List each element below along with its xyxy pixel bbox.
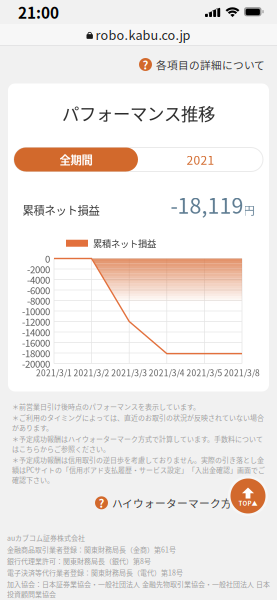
button[interactable]: ?	[0, 485, 277, 521]
button[interactable]: 2021	[138, 147, 263, 171]
staticText: ?	[142, 56, 148, 73]
staticText: 各項目の詳細について	[156, 57, 265, 72]
staticText: ＊予定成功報酬は信用取引の逆日歩を考慮しておりません。実際の引き落とし金額はPC…	[12, 455, 265, 485]
button[interactable]: Back to top	[228, 476, 268, 516]
staticText: -8000	[27, 293, 50, 307]
staticText: 2021/3/2	[74, 366, 110, 379]
staticText: -6000	[27, 283, 50, 297]
staticText: 銀行代理業許可：関東財務局長（銀代）第8号	[7, 556, 151, 566]
staticText: -14000	[22, 325, 50, 339]
staticText: ?	[98, 494, 104, 511]
staticText: 2021/3/4	[149, 366, 185, 379]
staticText: -18,119	[170, 189, 243, 220]
staticText: 電子決済等代行業者登録：関東財務局長（電代）第18号	[7, 567, 183, 577]
staticText: -18000	[22, 346, 50, 360]
staticText: ＊ご利用のタイミングによっては、直近のお取引の状況が反映されていない場合がありま…	[12, 412, 264, 433]
staticText: -12000	[22, 314, 50, 328]
staticText: auカブコム証券株式会社	[7, 533, 85, 543]
staticText: 21:00	[18, 1, 59, 23]
staticText: -16000	[22, 335, 50, 349]
staticText: -2000	[27, 262, 50, 276]
staticText: 全期間	[59, 151, 92, 168]
staticText: 加入協会：日本証券業協会・一般社団法人 金融先物取引業協会・一般社団法人 日本投…	[7, 579, 270, 599]
staticText: 円	[243, 201, 254, 218]
staticText: 2021/3/1	[36, 366, 72, 379]
staticText: 2021	[186, 151, 214, 168]
staticText: -4000	[27, 272, 50, 286]
staticText: TOP▲	[238, 499, 257, 507]
staticText: ハイウォーターマーク方式とは	[112, 495, 265, 510]
staticText: 2021/3/5	[186, 366, 222, 379]
staticText: 0	[45, 251, 50, 265]
staticText: 累積ネット損益	[93, 236, 156, 250]
staticText: 2021/3/8	[224, 366, 260, 379]
button[interactable]: ?	[0, 45, 277, 83]
staticText: ＊前営業日引け後時点のパフォーマンスを表示しています。	[12, 401, 200, 411]
staticText: -10000	[22, 304, 50, 318]
staticText: 金融商品取引業者登録：関東財務局長（金商）第61号	[7, 544, 176, 554]
staticText: 2021/3/3	[111, 366, 147, 379]
button[interactable]: 全期間	[14, 147, 138, 171]
staticText: robo.kabu.co.jp	[95, 25, 190, 44]
staticText: 累積ネット損益	[22, 201, 99, 218]
staticText: ＊予定成功報酬はハイウォーターマーク方式で計算しています。手数料についてはこちら…	[12, 434, 263, 454]
staticText: パフォーマンス推移	[62, 100, 215, 126]
staticText: -20000	[22, 356, 50, 370]
